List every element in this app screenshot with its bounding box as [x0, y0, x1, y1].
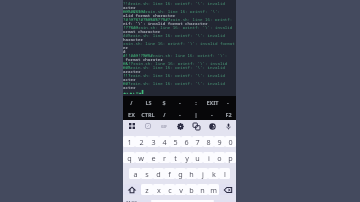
button[interactable]: Shift [123, 184, 141, 195]
button[interactable]: 6 [181, 136, 192, 147]
button[interactable]: ?123 [123, 200, 140, 202]
button[interactable]: k [208, 168, 219, 179]
button[interactable]: a [129, 168, 141, 179]
staticText: !!?rain.sh: line 16: printf: '\': invali… [123, 73, 236, 77]
staticText: k [212, 169, 216, 179]
button[interactable]: l [219, 168, 230, 179]
staticText: eif: '\': invalid format character [123, 21, 208, 25]
staticText: : [195, 99, 197, 106]
button[interactable]: Themes [204, 120, 220, 132]
button[interactable]: : [188, 96, 204, 108]
staticText: acter [123, 85, 136, 89]
button[interactable]: v [175, 184, 186, 195]
button[interactable]: 2 [135, 136, 147, 147]
button[interactable]: Voice input [220, 120, 236, 132]
button[interactable]: 7 [192, 136, 203, 147]
button[interactable]: 9 [214, 136, 225, 147]
staticText: format charater [123, 57, 163, 61]
button[interactable]: Stickers [140, 120, 156, 132]
button[interactable]: GIF [156, 120, 172, 132]
staticText: CTRL [141, 111, 155, 118]
staticText: 0 [228, 137, 233, 147]
button[interactable]: y [181, 152, 192, 163]
button[interactable]: 3 [147, 136, 159, 147]
button[interactable]: F2 [220, 108, 236, 120]
button[interactable]: / [156, 108, 172, 120]
button[interactable]: | [188, 108, 204, 120]
staticText: 5 [173, 137, 178, 147]
button[interactable]: o [214, 152, 225, 163]
button[interactable]: 1 [123, 136, 135, 147]
staticText: ?!#rain.sh: line 16: printf: '\': invali… [123, 1, 236, 5]
button[interactable]: 0 [225, 136, 236, 147]
button[interactable]: Translate [188, 120, 204, 132]
button[interactable]: u [192, 152, 203, 163]
staticText: / [130, 99, 133, 106]
button[interactable]: e [147, 152, 159, 163]
staticText: q [127, 153, 132, 163]
button[interactable]: 4 [159, 136, 170, 147]
staticText: $ [162, 99, 166, 106]
staticText: @#%rain.sh: line 16: printf: '\': invali… [123, 65, 236, 69]
staticText: n [200, 185, 205, 195]
staticText: F2 [225, 111, 232, 118]
button[interactable]: r [159, 152, 170, 163]
staticText: LS [145, 99, 152, 106]
button[interactable]: p [225, 152, 236, 163]
button[interactable]: - [220, 96, 236, 108]
button[interactable]: c [164, 184, 175, 195]
button[interactable]: f [164, 168, 175, 179]
button[interactable]: / [123, 96, 140, 108]
staticText: !??%#@rain.sh: line 16: printf: '\': inv… [123, 25, 236, 29]
button[interactable]: 8 [203, 136, 214, 147]
button[interactable]: EXIT [204, 96, 220, 108]
staticText: 4 [162, 137, 167, 147]
button[interactable]: g [175, 168, 186, 179]
button[interactable]: Apps [123, 120, 140, 132]
staticText: acter [123, 77, 136, 81]
button[interactable]: $ [156, 96, 172, 108]
staticText: x [157, 185, 161, 195]
button[interactable]: m [208, 184, 219, 195]
staticText: @&!?rain.sh: line 16: printf: '\': inval… [123, 61, 236, 65]
staticText: i [208, 153, 210, 163]
button[interactable]: q [123, 152, 135, 163]
button[interactable]: EX [123, 108, 140, 120]
button[interactable]: h [186, 168, 197, 179]
staticText: e [151, 153, 156, 163]
staticText: ?123 [126, 200, 137, 202]
staticText: alid format character [123, 13, 176, 17]
staticText: GIF [161, 124, 167, 129]
button[interactable]: x [153, 184, 164, 195]
button[interactable]: b [186, 184, 197, 195]
staticText: l [224, 169, 226, 179]
staticText: haracter [123, 37, 143, 41]
button[interactable]: n [197, 184, 208, 195]
button[interactable]: LS [140, 96, 156, 108]
button[interactable]: j [197, 168, 208, 179]
staticText: EXIT [206, 99, 219, 106]
button[interactable]: CTRL [140, 108, 156, 120]
button[interactable]: z [141, 184, 153, 195]
button[interactable]: - [172, 96, 188, 108]
button[interactable]: 5 [170, 136, 181, 147]
staticText: a [133, 169, 138, 179]
staticText: 9 [217, 137, 222, 147]
button[interactable]: Settings [172, 120, 188, 132]
button[interactable]: w [135, 152, 147, 163]
staticText: b [189, 185, 194, 195]
button[interactable]: s [141, 168, 153, 179]
button[interactable]: - [204, 108, 220, 120]
staticText: f [168, 169, 171, 179]
button[interactable]: Backspace [219, 184, 236, 195]
button[interactable]: i [203, 152, 214, 163]
staticText: 6 [184, 137, 189, 147]
button[interactable]: t [170, 152, 181, 163]
button[interactable]: d [153, 168, 164, 179]
staticText: #!!##@!?%@%#rain.sh: line 16: printf: '\… [123, 53, 236, 57]
button[interactable]: - [172, 108, 188, 120]
